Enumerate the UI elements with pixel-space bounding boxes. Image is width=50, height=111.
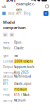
staticText: Aug 2025: [14, 71, 29, 74]
button[interactable]: Page settings: [0, 4, 8, 9]
staticText: Claude: [14, 46, 24, 50]
staticText: API: [16, 12, 21, 15]
staticText: 9:41: [6, 0, 16, 3]
staticText: Languages: [3, 75, 13, 82]
staticText: Supports tools: [14, 65, 34, 69]
staticText: Type: [3, 54, 9, 57]
button[interactable]: Account: [43, 11, 48, 16]
staticText: Multilingual: [14, 75, 31, 78]
staticText: Family: [3, 46, 10, 50]
staticText: Context: [3, 60, 13, 63]
staticText: Text: [14, 54, 18, 57]
staticText: Premium: [14, 88, 26, 91]
staticText: Tier: [3, 88, 8, 91]
staticText: Model comparison: [3, 19, 26, 30]
staticText: Training: [3, 71, 14, 74]
staticText: aA: [1, 4, 6, 9]
staticText: v3: [10, 33, 13, 36]
staticText: Output: [3, 65, 13, 69]
staticText: Price: [3, 93, 10, 97]
staticText: Blog: [24, 12, 31, 15]
staticText: Medium: [14, 99, 25, 102]
staticText: 200K tokens: [14, 60, 32, 63]
staticText: example.com: [16, 1, 35, 12]
staticText: $15 / Mtok: [14, 93, 29, 97]
staticText: v2: [4, 33, 7, 36]
staticText: Latency: [3, 99, 12, 102]
staticText: Name: [3, 41, 10, 44]
staticText: API: [3, 82, 8, 85]
staticText: Docs: [8, 12, 14, 15]
button[interactable]: Reload: [43, 4, 50, 9]
staticText: Opus: [14, 41, 21, 44]
staticText: claude-opus: [14, 82, 31, 85]
